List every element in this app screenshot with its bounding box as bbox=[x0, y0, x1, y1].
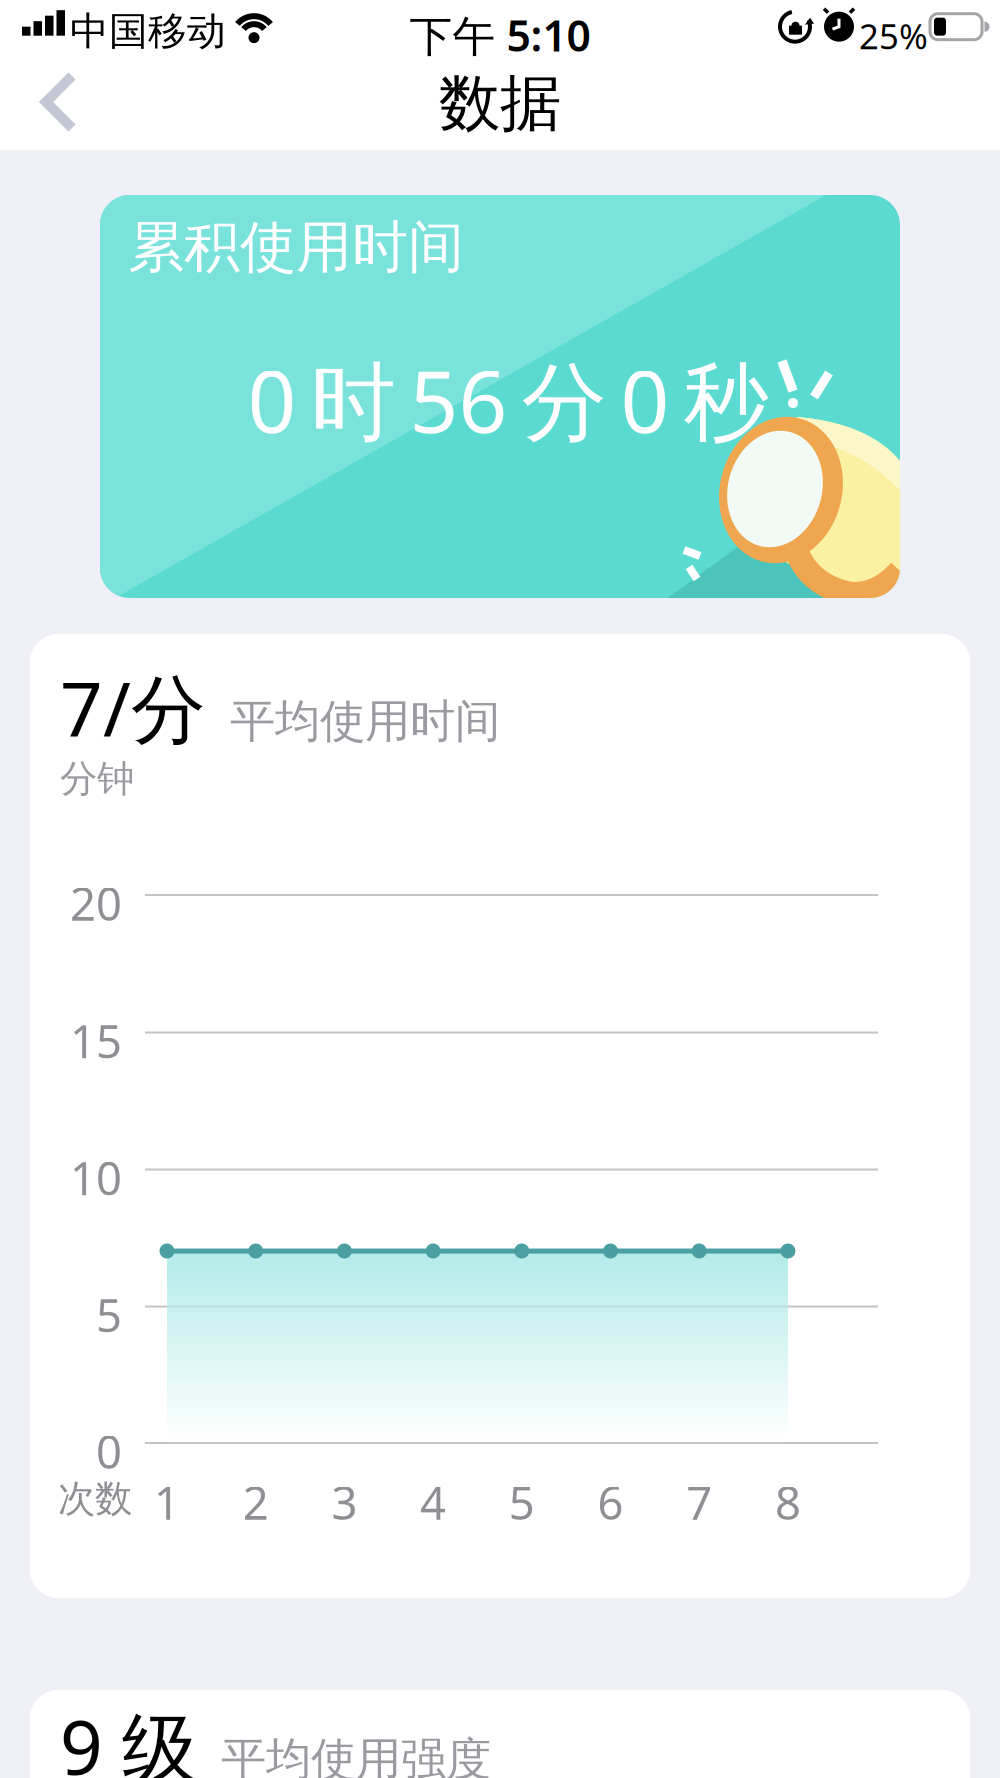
staticText: 2 bbox=[243, 1472, 269, 1532]
staticText: 0 时 56 分 0 秒 bbox=[247, 343, 768, 456]
staticText: 4 bbox=[420, 1472, 446, 1532]
staticText: 平均使用强度 bbox=[221, 1732, 491, 1778]
staticText: 中国移动 bbox=[70, 8, 226, 55]
staticText: 9 级 bbox=[60, 1696, 197, 1778]
staticText: 15 bbox=[70, 1010, 122, 1071]
staticText: 0 bbox=[96, 1421, 122, 1481]
staticText: 25% bbox=[859, 13, 928, 59]
staticText: 分钟 bbox=[60, 756, 134, 802]
staticText: 6 bbox=[597, 1472, 623, 1532]
staticText: 5 bbox=[96, 1284, 122, 1345]
staticText: 3 bbox=[331, 1472, 357, 1532]
staticText: 平均使用时间 bbox=[230, 694, 500, 749]
button[interactable]: 返回 bbox=[0, 0, 110, 150]
staticText: 次数 bbox=[58, 1476, 132, 1522]
staticText: 7/分 bbox=[60, 658, 206, 757]
staticText: 20 bbox=[70, 873, 122, 933]
staticText: 5 bbox=[509, 1472, 535, 1532]
staticText: 数据 bbox=[439, 66, 561, 141]
staticText: 1 bbox=[154, 1472, 180, 1532]
staticText: 下午 5:10 bbox=[409, 7, 590, 63]
staticText: 8 bbox=[775, 1472, 801, 1532]
staticText: 10 bbox=[70, 1147, 122, 1208]
staticText: 7 bbox=[686, 1472, 712, 1532]
staticText: 累积使用时间 bbox=[128, 213, 464, 282]
